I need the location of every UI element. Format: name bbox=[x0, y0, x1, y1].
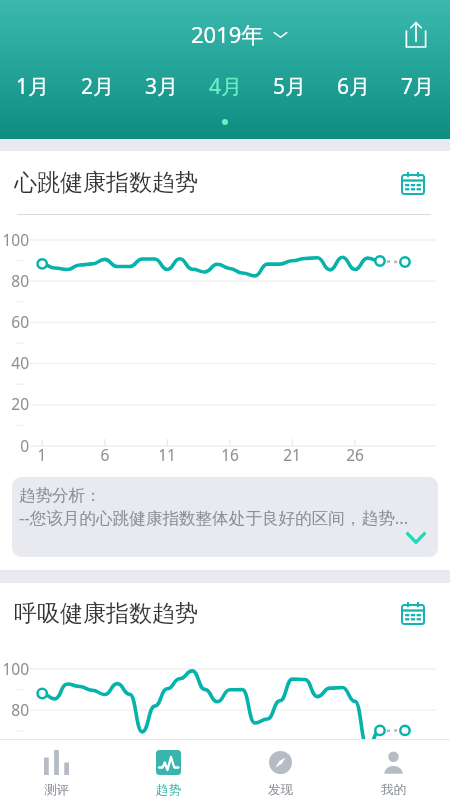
button[interactable]: Share bbox=[391, 9, 441, 59]
staticText: 我的 bbox=[381, 782, 406, 798]
staticText: 6 bbox=[90, 444, 120, 465]
staticText: 80 bbox=[0, 270, 29, 291]
staticText: 0 bbox=[0, 435, 29, 456]
button[interactable]: 测评 bbox=[0, 740, 112, 800]
button[interactable]: 2019年 bbox=[185, 13, 294, 55]
staticText: 3月 bbox=[145, 72, 179, 101]
staticText: 7月 bbox=[401, 72, 435, 101]
staticText: 发现 bbox=[268, 782, 293, 798]
staticText: 20 bbox=[0, 393, 29, 414]
button[interactable]: Calendar bbox=[393, 163, 433, 203]
staticText: 5月 bbox=[273, 72, 307, 101]
button[interactable]: Expand bbox=[398, 520, 434, 556]
staticText: 1 bbox=[27, 444, 57, 465]
button[interactable]: 趋势 bbox=[112, 740, 224, 800]
button[interactable]: 6月 bbox=[322, 63, 386, 109]
button[interactable]: 5月 bbox=[258, 63, 322, 109]
staticText: 80 bbox=[0, 699, 29, 720]
staticText: 测评 bbox=[44, 782, 69, 798]
staticText: 100 bbox=[0, 658, 29, 679]
staticText: 心跳健康指数趋势 bbox=[14, 168, 198, 197]
staticText: 4月 bbox=[209, 72, 243, 101]
staticText: 2月 bbox=[81, 72, 115, 101]
staticText: --您该月的心跳健康指数整体处于良好的区间，趋势... bbox=[19, 506, 409, 529]
staticText: 40 bbox=[0, 352, 29, 373]
button[interactable]: 3月 bbox=[130, 63, 194, 109]
staticText: 趋势 bbox=[156, 782, 181, 798]
button[interactable]: 我的 bbox=[337, 740, 450, 800]
button[interactable]: 1月 bbox=[0, 63, 65, 109]
staticText: 26 bbox=[340, 444, 370, 465]
button[interactable]: 2月 bbox=[65, 63, 130, 109]
button[interactable]: 趋势分析： bbox=[12, 477, 438, 557]
button[interactable]: 4月 bbox=[194, 63, 258, 109]
button[interactable]: 发现 bbox=[224, 740, 337, 800]
button[interactable]: 7月 bbox=[386, 63, 450, 109]
staticText: 6月 bbox=[337, 72, 371, 101]
staticText: 21 bbox=[277, 444, 307, 465]
staticText: 16 bbox=[215, 444, 245, 465]
button[interactable]: Calendar bbox=[393, 593, 433, 633]
staticText: 1月 bbox=[16, 72, 50, 101]
staticText: 11 bbox=[152, 444, 182, 465]
staticText: 100 bbox=[0, 229, 29, 250]
staticText: 2019年 bbox=[191, 19, 264, 49]
staticText: 60 bbox=[0, 311, 29, 332]
staticText: 趋势分析： bbox=[19, 485, 102, 506]
staticText: 呼吸健康指数趋势 bbox=[14, 599, 198, 628]
